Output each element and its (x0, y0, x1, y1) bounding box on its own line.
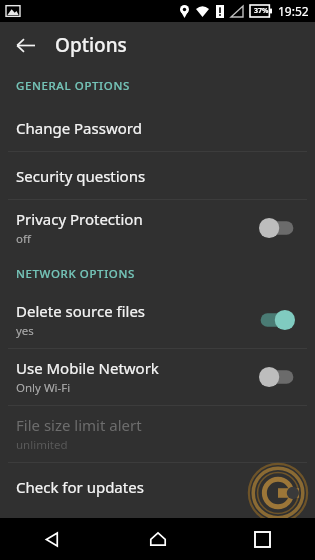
button[interactable] (258, 309, 296, 331)
staticText: Delete source files (16, 301, 146, 321)
staticText: File size limit alert (16, 415, 142, 435)
staticText: 19:52 (278, 3, 309, 19)
staticText: Check for updates (16, 477, 144, 497)
staticText: Options (55, 32, 127, 58)
button[interactable]: Check for updates (0, 463, 315, 510)
staticText: yes (16, 323, 34, 339)
button[interactable]: Home (105, 518, 210, 560)
button[interactable]: Back (0, 518, 105, 560)
button[interactable]: Security questions (0, 152, 315, 199)
staticText: NETWORK OPTIONS (16, 266, 135, 282)
button[interactable] (258, 366, 296, 388)
button[interactable]: Delete source files (0, 292, 315, 348)
button[interactable]: Privacy Protection (0, 200, 315, 256)
button[interactable]: Recents (210, 518, 315, 560)
staticText: off (16, 231, 31, 247)
staticText: GENERAL OPTIONS (16, 78, 130, 94)
staticText: unlimited (16, 437, 68, 453)
staticText: Privacy Protection (16, 209, 143, 229)
button[interactable]: Back (8, 28, 42, 62)
button[interactable]: Use Mobile Network (0, 349, 315, 405)
staticText: Use Mobile Network (16, 358, 159, 378)
staticText: 37% (254, 6, 269, 16)
staticText: Change Password (16, 118, 142, 138)
button[interactable] (258, 217, 296, 239)
staticText: Only Wi-Fi (16, 380, 71, 396)
button[interactable]: Change Password (0, 104, 315, 151)
staticText: Security questions (16, 166, 146, 186)
button: File size limit alert (0, 406, 315, 462)
